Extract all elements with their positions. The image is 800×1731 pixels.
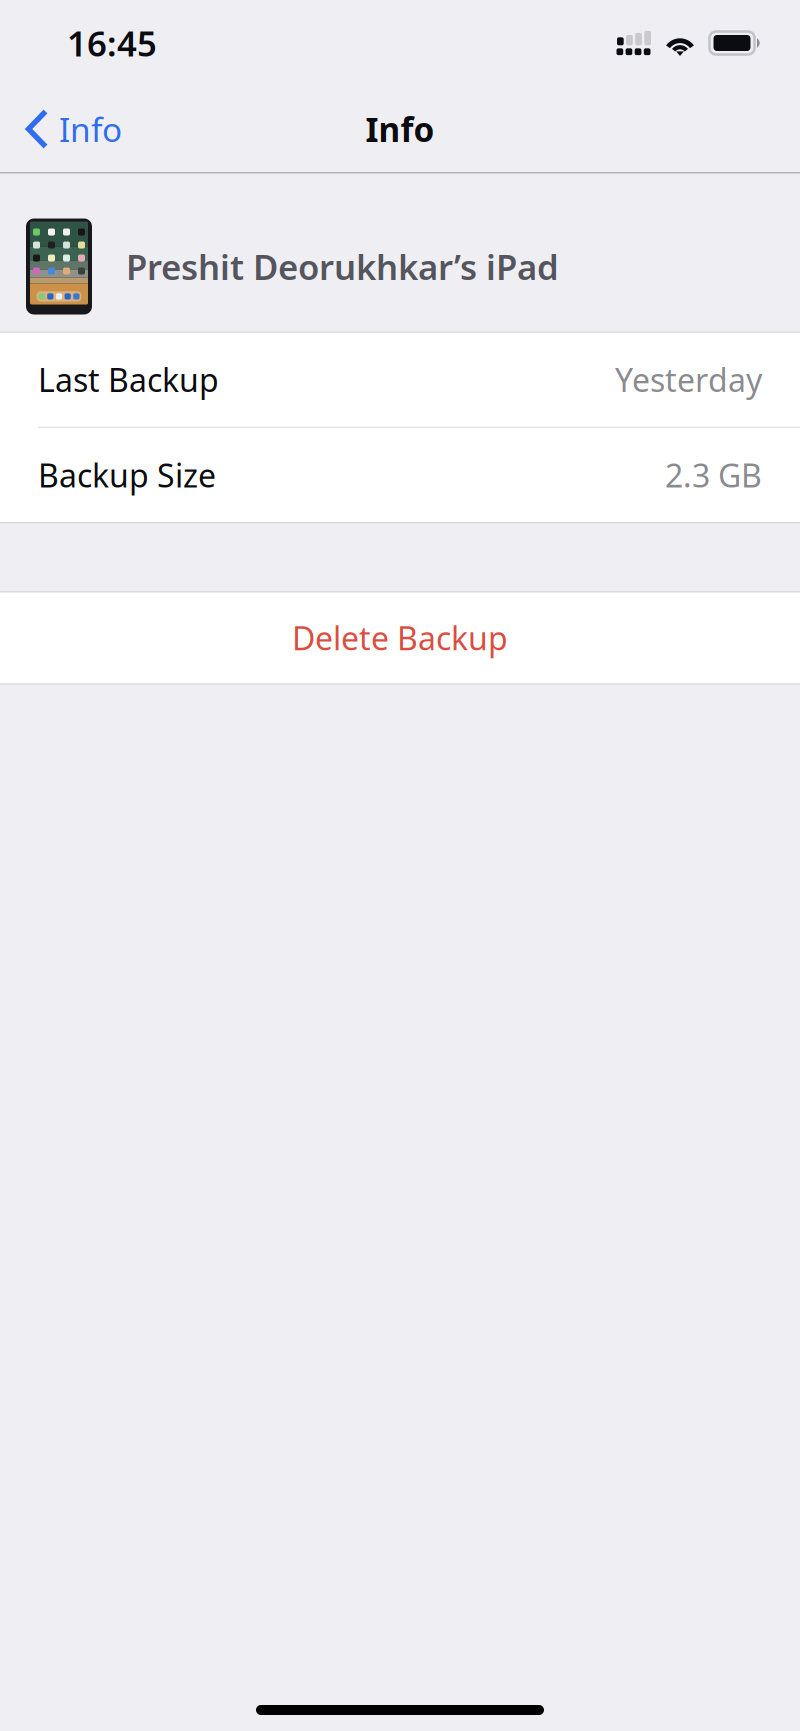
staticText: Preshit Deorukhkar’s iPad xyxy=(126,243,559,289)
staticText: 16:45 xyxy=(67,20,157,66)
staticText: Delete Backup xyxy=(292,617,508,659)
staticText: 2.3 GB xyxy=(665,454,762,496)
staticText: Last Backup xyxy=(38,358,219,401)
button[interactable]: Back to Info xyxy=(0,86,220,172)
staticText: Info xyxy=(59,107,122,151)
staticText: Backup Size xyxy=(38,454,216,496)
staticText: Info xyxy=(365,107,434,151)
staticText: Yesterday xyxy=(615,358,762,401)
button[interactable]: Delete Backup xyxy=(0,591,800,685)
